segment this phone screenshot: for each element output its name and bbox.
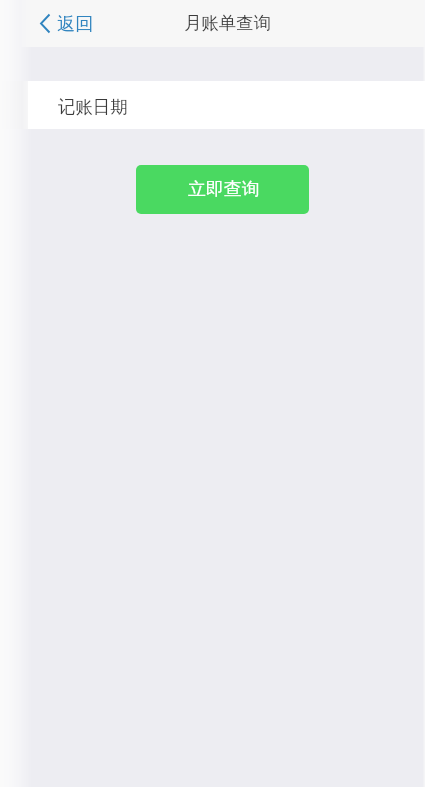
button[interactable]: 记账日期	[28, 81, 425, 129]
staticText: 记账日期	[58, 96, 128, 118]
staticText: 月账单查询	[184, 12, 271, 34]
button[interactable]: 立即查询	[136, 165, 309, 214]
button[interactable]: 返回	[34, 4, 100, 43]
staticText: 返回	[57, 12, 94, 35]
staticText: 立即查询	[188, 178, 260, 201]
